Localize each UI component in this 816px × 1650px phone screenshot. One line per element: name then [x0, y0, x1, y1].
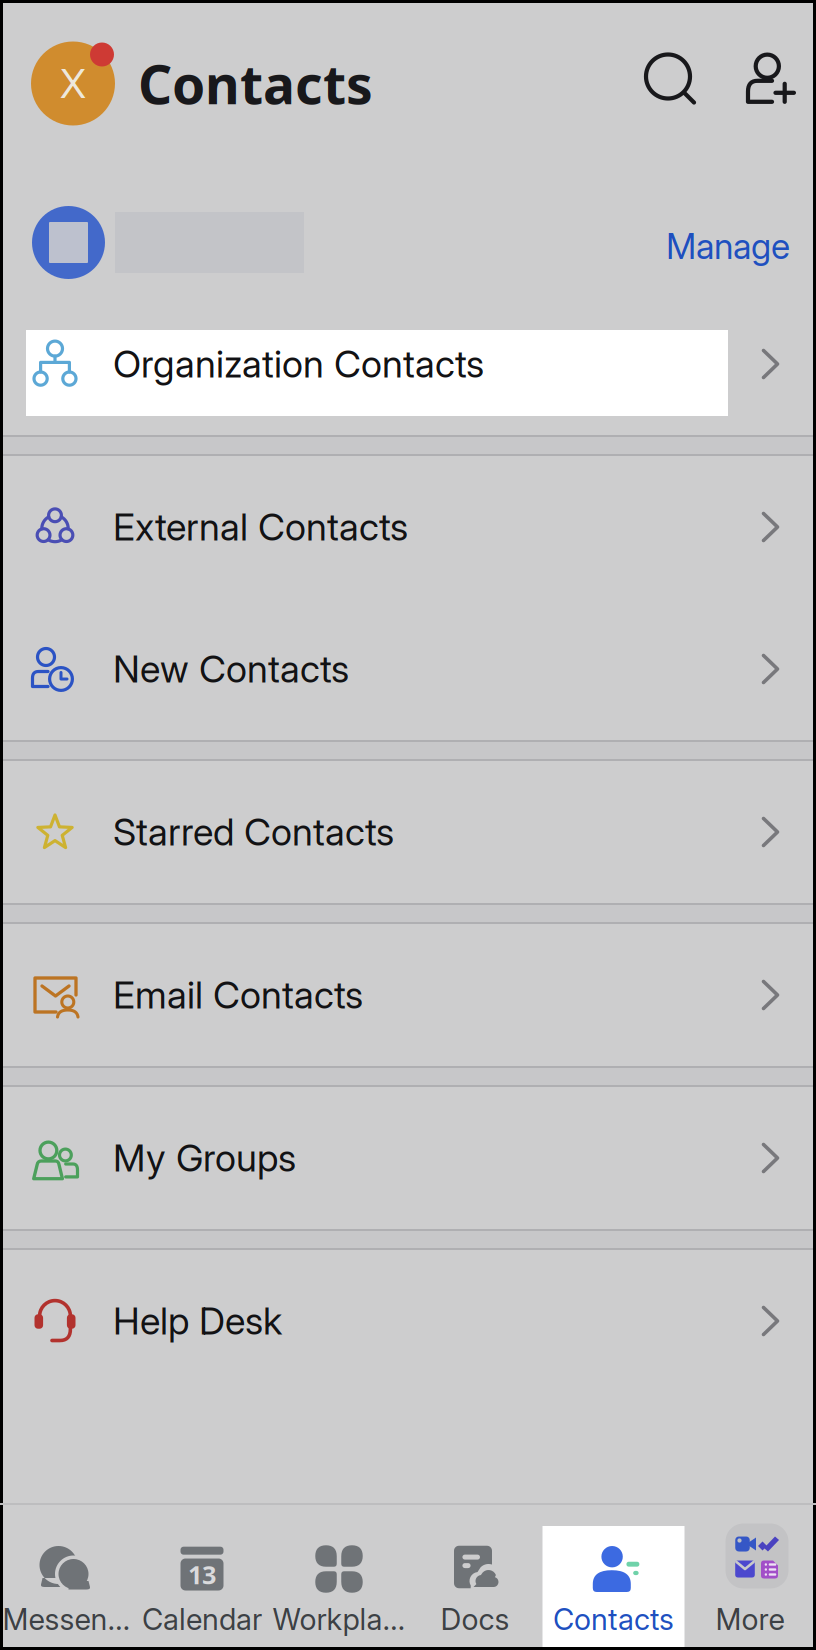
- staticText: Help Desk: [113, 1298, 282, 1344]
- staticText: More: [715, 1601, 784, 1637]
- button[interactable]: New Contacts: [3, 598, 813, 740]
- button[interactable]: External Contacts: [3, 456, 813, 598]
- button[interactable]: Messen…: [0, 1526, 133, 1647]
- staticText: 13: [188, 1558, 216, 1591]
- staticText: Workpla…: [272, 1601, 405, 1637]
- button[interactable]: Email Contacts: [3, 924, 813, 1066]
- staticText: Manage: [666, 225, 790, 267]
- staticText: Docs: [440, 1601, 509, 1637]
- staticText: My Groups: [113, 1135, 296, 1181]
- button[interactable]: Workpla…: [271, 1526, 407, 1647]
- button[interactable]: Add contact: [748, 54, 798, 104]
- button[interactable]: Account: [32, 206, 105, 279]
- staticText: Messen…: [2, 1601, 130, 1637]
- staticText: Contacts: [553, 1601, 674, 1637]
- button[interactable]: My Groups: [3, 1087, 813, 1229]
- staticText: X: [60, 59, 86, 108]
- button[interactable]: Organization Contacts: [3, 293, 813, 435]
- staticText: Calendar: [142, 1601, 262, 1637]
- staticText: Starred Contacts: [113, 809, 394, 855]
- staticText: New Contacts: [113, 646, 349, 692]
- button[interactable]: Contacts: [543, 1526, 684, 1647]
- button[interactable]: Profile: [29, 39, 117, 127]
- staticText: Organization Contacts: [113, 341, 484, 387]
- button[interactable]: Starred Contacts: [3, 761, 813, 903]
- button[interactable]: Search: [644, 52, 696, 104]
- staticText: External Contacts: [113, 504, 408, 550]
- staticText: Email Contacts: [113, 972, 363, 1018]
- button[interactable]: Help Desk: [3, 1250, 813, 1392]
- staticText: Contacts: [138, 48, 373, 119]
- button[interactable]: Docs: [407, 1526, 543, 1647]
- button[interactable]: More: [684, 1526, 816, 1647]
- button[interactable]: 13: [133, 1526, 271, 1647]
- button[interactable]: Manage: [666, 221, 790, 263]
